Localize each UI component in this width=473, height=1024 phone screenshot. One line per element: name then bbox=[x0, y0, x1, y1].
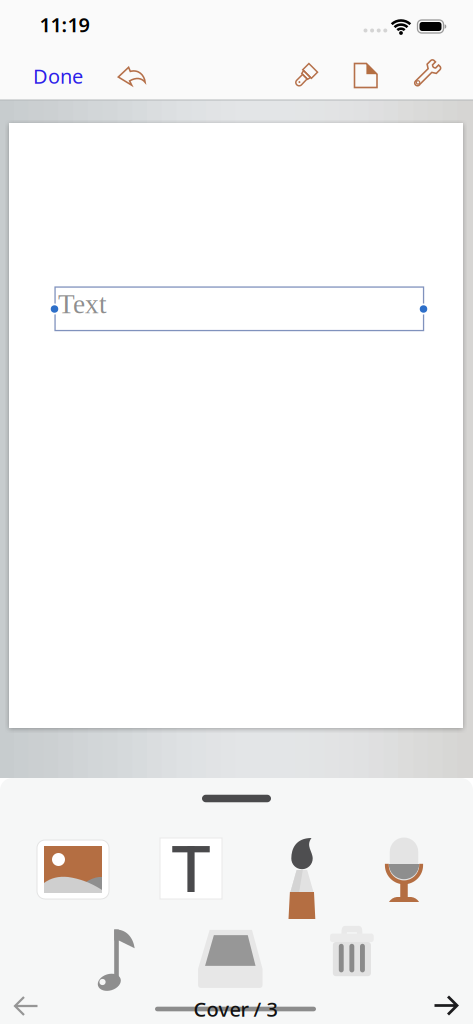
button[interactable]: Tools bbox=[403, 53, 447, 97]
button[interactable]: Record Audio bbox=[385, 835, 423, 902]
staticText: Done bbox=[33, 63, 83, 89]
button[interactable]: Next Page bbox=[433, 995, 459, 1016]
button[interactable]: Undo bbox=[111, 59, 151, 95]
button[interactable]: Archive bbox=[198, 930, 263, 988]
button[interactable]: Add Page bbox=[345, 55, 385, 95]
staticText: Text bbox=[58, 289, 107, 319]
button[interactable]: Insert Photo bbox=[37, 840, 109, 899]
button[interactable]: Cover, page 1 of 3 bbox=[145, 990, 326, 1024]
button[interactable]: Previous Page bbox=[12, 995, 38, 1016]
button[interactable]: Paint bbox=[280, 833, 324, 917]
button[interactable]: Done bbox=[23, 58, 93, 94]
button[interactable]: Delete bbox=[330, 926, 374, 976]
staticText: 11:19 bbox=[39, 11, 89, 38]
staticText: Cover / 3 bbox=[193, 996, 277, 1022]
button[interactable]: Music bbox=[91, 926, 135, 992]
button[interactable]: Insert Text bbox=[160, 838, 222, 899]
button[interactable]: Format bbox=[284, 53, 328, 97]
